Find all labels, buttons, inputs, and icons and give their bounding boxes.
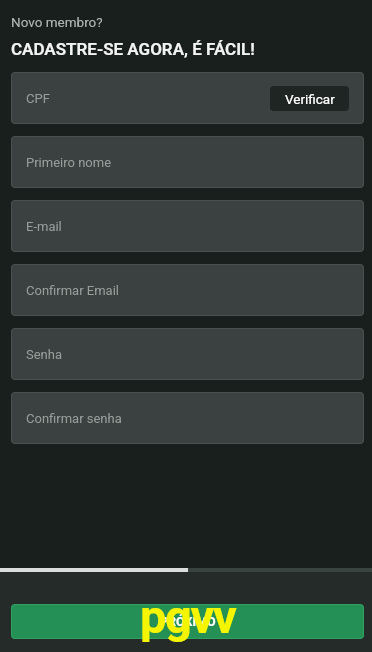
button[interactable]: PRÓXIMO	[11, 604, 364, 639]
staticText: Confirmar Email	[26, 283, 119, 298]
button[interactable]: Verificar	[270, 86, 349, 111]
staticText: Primeiro nome	[26, 155, 112, 170]
staticText: CADASTRE-SE AGORA, É FÁCIL!	[11, 39, 255, 59]
button[interactable]: Senha	[11, 328, 364, 380]
staticText: E-mail	[26, 219, 62, 234]
button[interactable]: Primeiro nome	[11, 136, 364, 188]
staticText: CPF	[26, 91, 50, 106]
button[interactable]: Confirmar Email	[11, 264, 364, 316]
staticText: Senha	[26, 347, 63, 362]
staticText: PRÓXIMO	[160, 614, 216, 629]
button[interactable]: E-mail	[11, 200, 364, 252]
staticText: Verificar	[285, 91, 335, 107]
button[interactable]: CPF	[11, 72, 364, 124]
staticText: Novo membro?	[11, 14, 103, 30]
staticText: Confirmar senha	[26, 411, 122, 426]
staticText: pgvv	[140, 589, 236, 644]
button[interactable]: Confirmar senha	[11, 392, 364, 444]
